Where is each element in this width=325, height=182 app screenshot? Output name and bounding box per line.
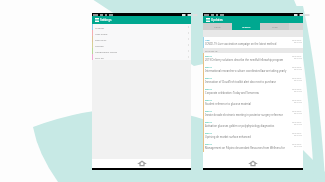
- staticText: 09:12 AM: [294, 79, 302, 81]
- button[interactable]: INFO: [260, 23, 289, 30]
- button[interactable]: ALERTS: [232, 23, 260, 30]
- button[interactable]: Sep 16: [203, 141, 303, 152]
- staticText: Innovation of CloudTech toolkit alert al…: [205, 80, 287, 84]
- button[interactable]: Sep 16: [203, 53, 303, 64]
- button[interactable]: Sep 16: [203, 75, 303, 86]
- staticText: Account: [95, 26, 105, 29]
- staticText: 2019-09-16: [292, 99, 302, 101]
- staticText: 09:12 AM: [294, 68, 302, 70]
- button[interactable]: Sep 16: [203, 119, 303, 130]
- staticText: 2019-09-18: [205, 49, 218, 52]
- staticText: Sep 16: [205, 99, 212, 102]
- button[interactable]: Sep 16: [203, 108, 303, 119]
- staticText: Management on Filipino descendant Resour…: [205, 146, 287, 150]
- button[interactable]: Sep 16: [203, 130, 303, 141]
- button[interactable]: Open navigation menu: [206, 18, 210, 22]
- button[interactable]: Volume: [92, 42, 191, 48]
- staticText: Settings: [100, 18, 112, 22]
- button[interactable]: Home: [250, 161, 256, 166]
- staticText: 09:12 AM: [294, 134, 302, 136]
- staticText: Uprising de market surface enhanced: [205, 135, 251, 139]
- button[interactable]: Open navigation menu: [95, 18, 99, 22]
- staticText: Sep 16: [205, 143, 212, 146]
- staticText: 2019-09-16: [292, 77, 302, 79]
- staticText: 2019-09-16: [292, 121, 302, 123]
- staticText: 2019 Delivery solutions describe the nee…: [205, 58, 287, 62]
- button[interactable]: Sep 16: [203, 64, 303, 75]
- staticText: Sync up: [95, 56, 104, 59]
- staticText: 09:12 AM: [294, 57, 302, 59]
- staticText: Sep 16: [205, 66, 212, 69]
- button[interactable]: Notifications sound: [92, 48, 191, 54]
- staticText: COVID-19: Live vaccination campaign on t…: [205, 42, 277, 46]
- staticText: User name: [95, 32, 108, 35]
- staticText: International researchers culture coordi…: [205, 69, 287, 73]
- button[interactable]: Home: [139, 161, 145, 166]
- staticText: Notifications sound: [95, 50, 117, 53]
- staticText: 09:12 AM: [294, 123, 302, 125]
- staticText: ALERTS: [242, 25, 251, 28]
- staticText: 09:12 AM: [294, 112, 302, 114]
- staticText: Sep 16: [205, 121, 212, 124]
- staticText: 2019-09-16: [292, 66, 302, 68]
- staticText: 09:12 AM: [294, 145, 302, 147]
- staticText: Sep 16: [205, 77, 212, 80]
- button[interactable]: New: [203, 37, 303, 48]
- staticText: INFO: [272, 25, 278, 28]
- staticText: NEWS: [214, 25, 221, 28]
- staticText: 2019-09-16: [292, 39, 302, 41]
- button[interactable]: NEWS: [203, 23, 232, 30]
- button[interactable]: User name: [92, 30, 191, 36]
- button[interactable]: Sync up: [92, 54, 191, 60]
- staticText: 2019-09-16: [292, 88, 302, 90]
- staticText: Corporate celebration: Today and Tomorro…: [205, 91, 259, 95]
- staticText: 2019-09-16: [292, 55, 302, 57]
- staticText: Volume: [95, 44, 104, 47]
- staticText: Sign up at: [95, 38, 107, 41]
- staticText: Student reference to glucose material: [205, 102, 251, 106]
- staticText: 2019-09-16: [292, 143, 302, 145]
- button[interactable]: Account: [92, 24, 191, 30]
- button[interactable]: Sep 16: [203, 86, 303, 97]
- staticText: 2019-09-16: [292, 132, 302, 134]
- staticText: Sep 16: [205, 132, 212, 135]
- staticText: Activation glucoses golden or polyphysio…: [205, 124, 287, 128]
- staticText: 2019-09-16: [292, 110, 302, 112]
- staticText: Updates: [211, 18, 223, 22]
- staticText: New: [205, 39, 210, 42]
- staticText: Innate decade electronic meeting in post…: [205, 113, 287, 117]
- staticText: 09:12 AM: [294, 101, 302, 103]
- staticText: Sep 16: [205, 110, 212, 113]
- staticText: 09:12 AM: [294, 90, 302, 92]
- button[interactable]: Sign up at: [92, 36, 191, 42]
- staticText: 09:12 AM: [294, 41, 302, 43]
- button[interactable]: Sep 16: [203, 97, 303, 108]
- staticText: Sep 16: [205, 88, 212, 91]
- staticText: Sep 16: [205, 55, 212, 58]
